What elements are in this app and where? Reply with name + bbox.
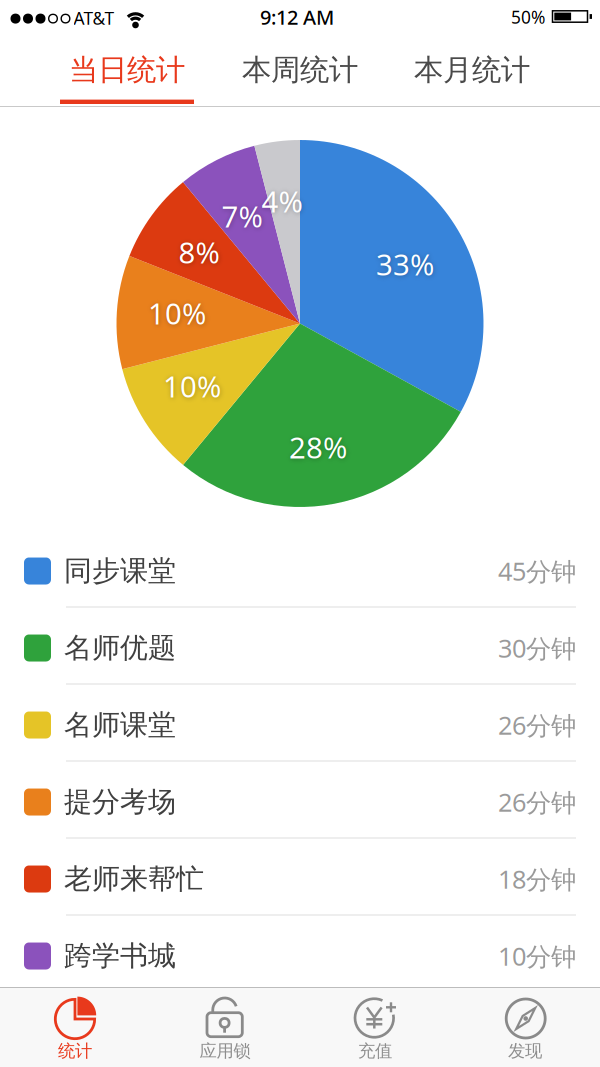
button[interactable]: 发现: [450, 988, 600, 1067]
staticText: 老师来帮忙: [64, 862, 204, 896]
staticText: 10%: [148, 293, 206, 332]
staticText: 45分钟: [498, 554, 576, 588]
staticText: 10%: [163, 366, 221, 405]
staticText: 10分钟: [498, 939, 576, 973]
button[interactable]: 本月统计: [392, 41, 552, 99]
staticText: 30分钟: [498, 631, 576, 665]
staticText: 发现: [508, 1040, 542, 1062]
button[interactable]: 当日统计: [47, 41, 207, 99]
staticText: 8%: [178, 232, 219, 271]
staticText: 名师优题: [64, 631, 176, 665]
staticText: 26分钟: [498, 708, 576, 742]
button[interactable]: 统计: [0, 988, 150, 1067]
staticText: 18分钟: [498, 862, 576, 896]
staticText: 9:12 AM: [260, 4, 334, 30]
button[interactable]: 应用锁: [150, 988, 300, 1067]
staticText: 33%: [376, 244, 434, 283]
staticText: 7%: [221, 196, 262, 235]
staticText: 28%: [289, 427, 347, 466]
staticText: 同步课堂: [64, 554, 176, 588]
staticText: 应用锁: [199, 1040, 250, 1062]
staticText: 跨学书城: [64, 939, 176, 973]
staticText: 当日统计: [69, 52, 185, 88]
staticText: 提分考场: [64, 785, 176, 819]
staticText: 充值: [358, 1040, 392, 1062]
staticText: 名师课堂: [64, 708, 176, 742]
staticText: 本周统计: [242, 52, 358, 88]
staticText: 26分钟: [498, 785, 576, 819]
staticText: 4%: [261, 181, 302, 220]
button[interactable]: 充值: [300, 988, 450, 1067]
staticText: AT&T: [73, 6, 114, 29]
button[interactable]: 本周统计: [220, 41, 380, 99]
staticText: 本月统计: [414, 52, 530, 88]
staticText: 统计: [58, 1040, 92, 1062]
staticText: 50%: [511, 5, 545, 28]
